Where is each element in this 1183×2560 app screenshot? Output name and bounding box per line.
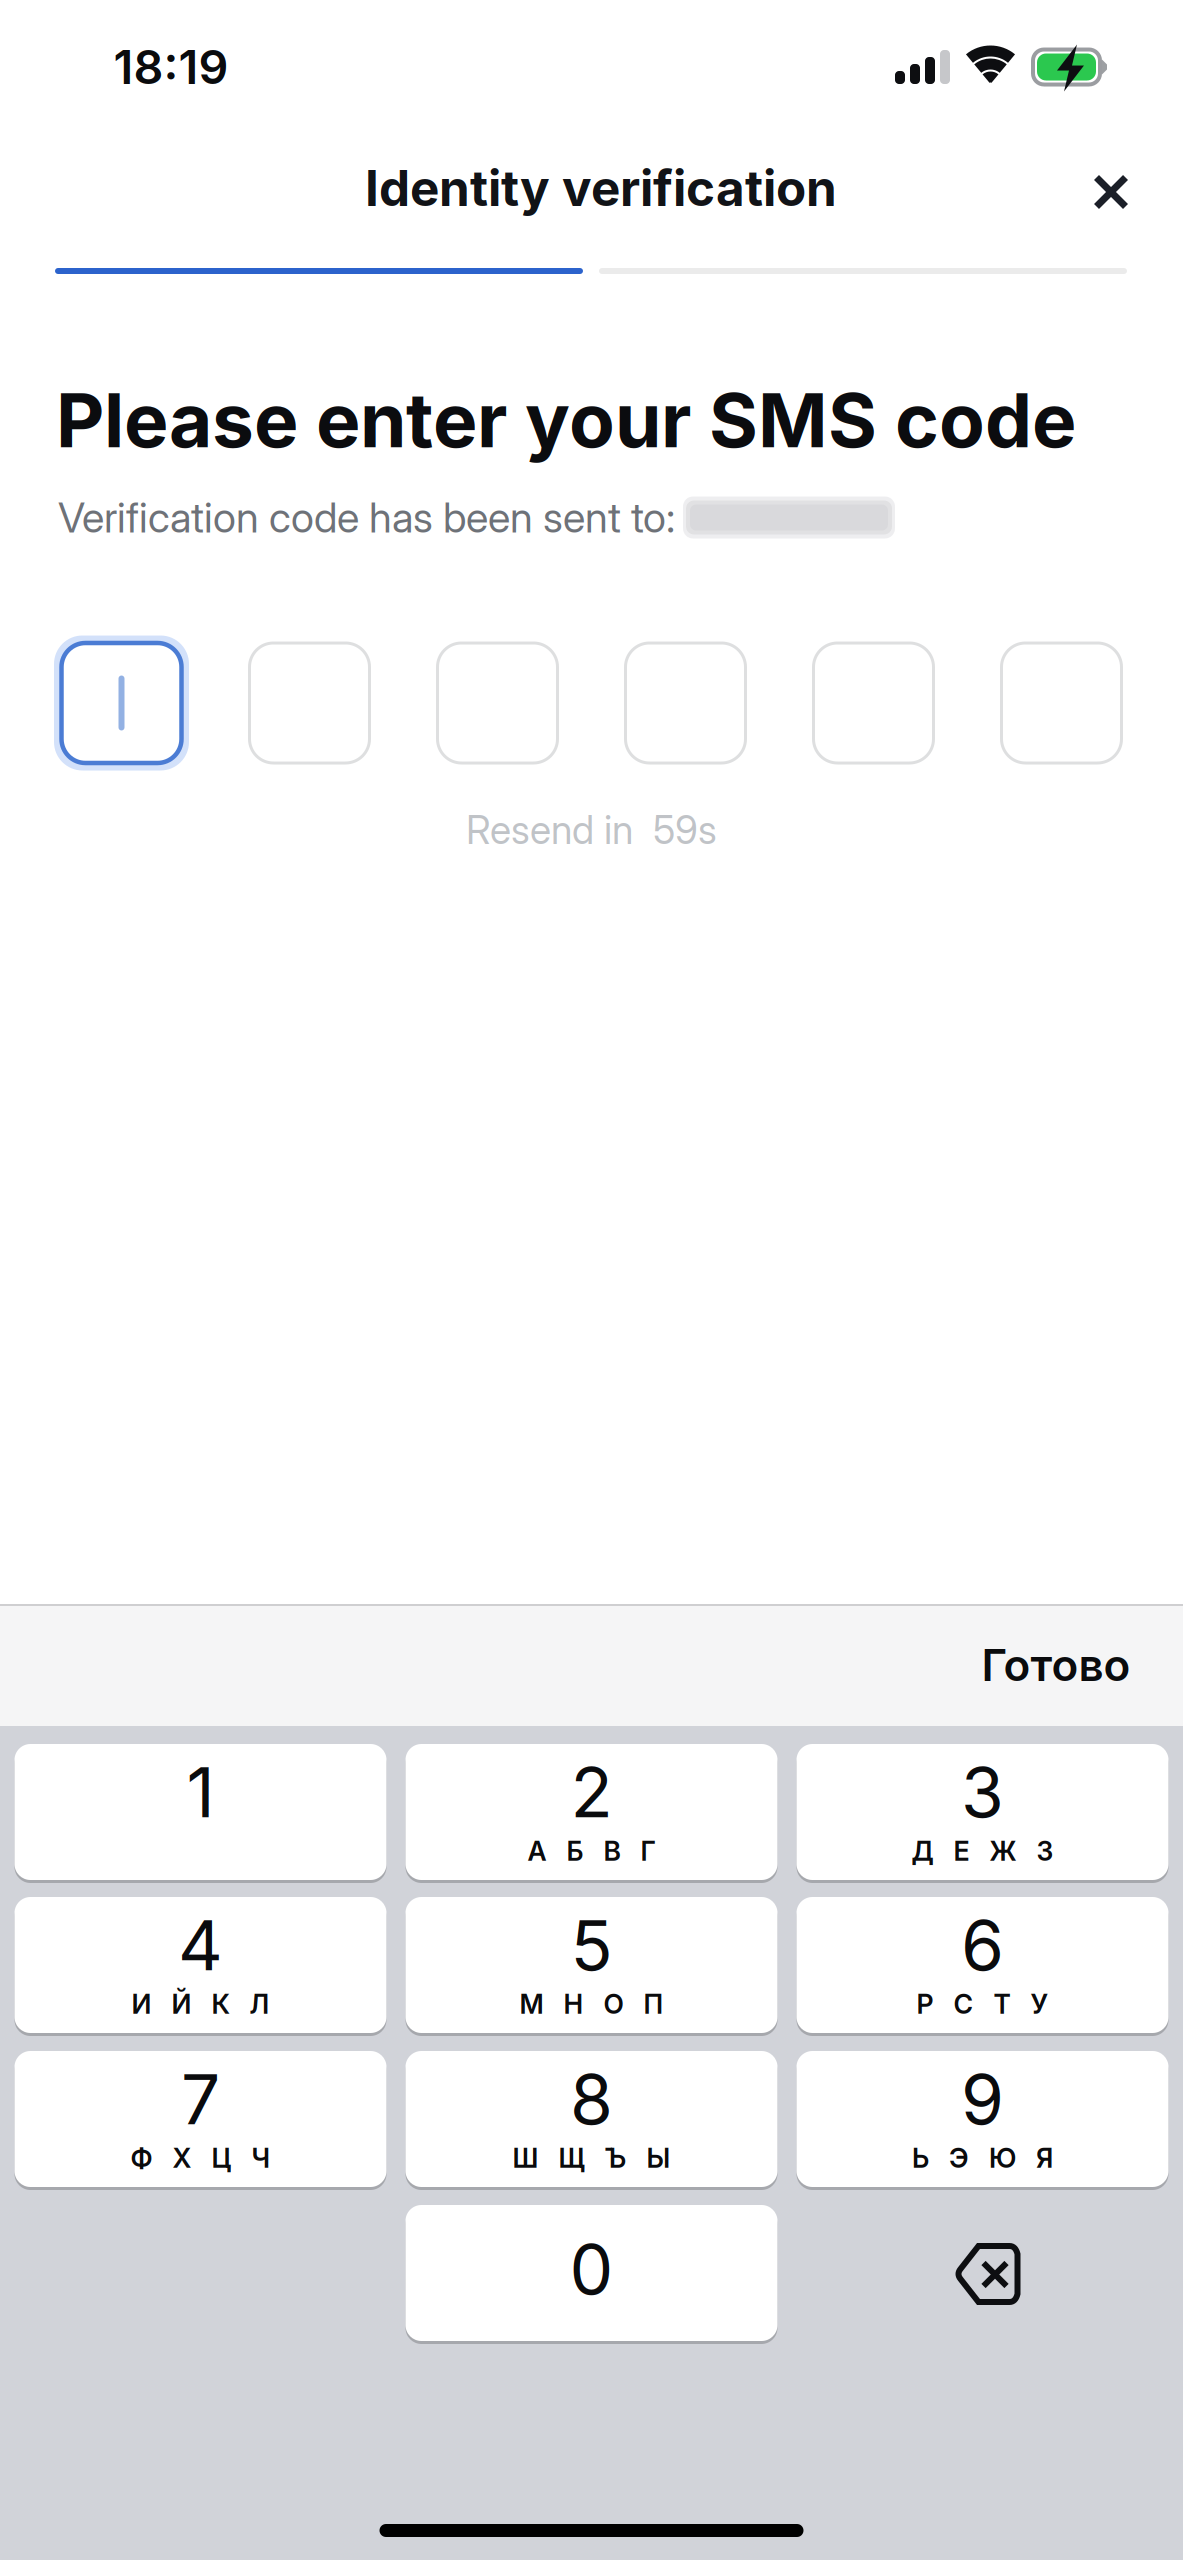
button[interactable] [249, 643, 369, 763]
staticText: Ф Х Ц Ч [130, 2142, 270, 2174]
button[interactable] [61, 643, 181, 763]
staticText: 1 [186, 1750, 214, 1834]
staticText: 18:19 [113, 39, 228, 95]
staticText: 2 [570, 1750, 612, 1834]
staticText: 0 [569, 2227, 613, 2311]
staticText: Д Е Ж З [911, 1835, 1053, 1867]
button[interactable] [625, 643, 745, 763]
staticText: 8 [570, 2057, 613, 2141]
staticText: Resend in 59s [466, 807, 717, 853]
staticText: 6 [961, 1903, 1004, 1987]
button[interactable]: 3 [796, 1744, 1168, 1880]
button[interactable]: Close [1063, 140, 1159, 236]
button[interactable]: 2 [405, 1744, 777, 1880]
staticText: М Н О П [519, 1988, 663, 2020]
staticText: Identity verification [365, 158, 837, 218]
button[interactable]: 0 [405, 2205, 777, 2341]
staticText: А Б В Г [527, 1835, 655, 1867]
staticText: Готово [981, 1638, 1130, 1692]
staticText: Ь Э Ю Я [912, 2142, 1053, 2174]
staticText: 4 [178, 1903, 223, 1987]
button[interactable]: Delete [796, 2205, 1168, 2341]
staticText: Ш Щ Ъ Ы [512, 2142, 670, 2174]
staticText: И Й К Л [131, 1988, 269, 2020]
button[interactable] [813, 643, 933, 763]
staticText: 9 [961, 2057, 1004, 2141]
button[interactable] [1001, 643, 1121, 763]
button[interactable]: 6 [796, 1897, 1168, 2033]
staticText: Please enter your SMS code [56, 375, 1076, 465]
button[interactable]: 7 [14, 2051, 386, 2187]
button[interactable]: Готово [954, 1617, 1158, 1713]
button[interactable]: 1 [14, 1744, 386, 1880]
staticText: 7 [181, 2057, 220, 2141]
staticText: 5 [570, 1903, 612, 1987]
button[interactable]: 9 [796, 2051, 1168, 2187]
button[interactable]: 4 [14, 1897, 386, 2033]
button[interactable]: 8 [405, 2051, 777, 2187]
button[interactable]: 5 [405, 1897, 777, 2033]
staticText: 3 [961, 1750, 1004, 1834]
staticText: Verification code has been sent to: [58, 492, 675, 542]
button[interactable] [437, 643, 557, 763]
staticText: Р С Т У [916, 1988, 1048, 2020]
